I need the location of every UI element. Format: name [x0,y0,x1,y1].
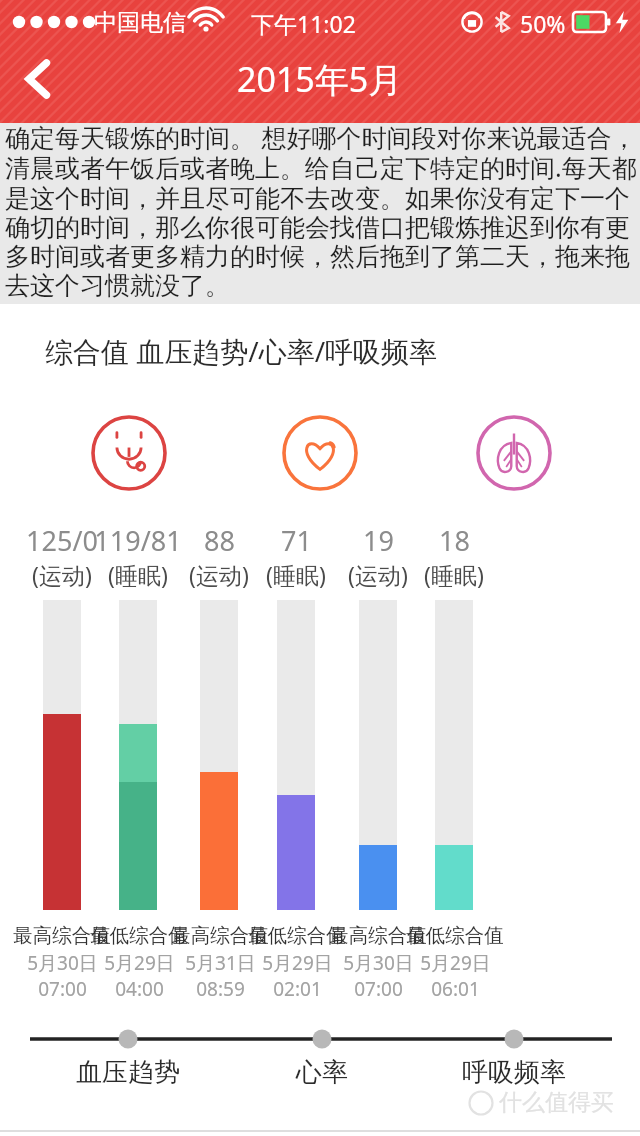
staticText: 71 [281,522,312,559]
staticText: 心率 [296,1056,348,1089]
staticText: 综合值 血压趋势/心率/呼吸频率 [45,332,438,370]
staticText: 07:00 [38,976,87,1002]
staticText: (睡眠) [266,559,326,590]
staticText: 5月30日 [27,950,98,976]
staticText: 06:01 [431,976,480,1002]
staticText: 5月31日 [185,950,256,976]
staticText: 5月29日 [262,950,333,976]
staticText: (睡眠) [108,559,168,590]
button[interactable]: 心率 [281,414,359,492]
staticText: 119/81 [94,522,182,559]
staticText: (运动) [348,559,408,590]
button[interactable]: 血压趋势 [58,1048,198,1096]
staticText: 88 [204,522,235,559]
staticText: 中国电信 [94,8,186,36]
staticText: 下午11:02 [251,8,356,36]
staticText: 最高综合值 [329,923,427,948]
button[interactable]: 呼吸频率 [444,1048,584,1096]
staticText: 什么值得买 [499,1088,614,1117]
staticText: 最低综合值 [406,923,504,948]
staticText: 07:00 [354,976,403,1002]
staticText: (运动) [32,559,92,590]
staticText: 5月30日 [343,950,414,976]
staticText: 确定每天锻炼的时间。 想好哪个时间段对你来说最适合，清晨或者午饭后或者晚上。给自… [5,120,639,301]
staticText: 125/0 [26,522,98,559]
staticText: (睡眠) [424,559,484,590]
staticText: 08:59 [196,976,245,1002]
staticText: 最低综合值 [248,923,346,948]
staticText: 血压趋势 [76,1056,180,1089]
staticText: 5月29日 [104,950,175,976]
button[interactable]: 血压趋势 [90,414,168,492]
staticText: 04:00 [115,976,164,1002]
staticText: 最低综合值 [90,923,188,948]
staticText: 呼吸频率 [462,1056,566,1089]
staticText: 19 [363,522,394,559]
staticText: 最高综合值 [13,923,111,948]
button[interactable]: 呼吸频率 [475,414,553,492]
button[interactable]: 返回 [8,48,70,110]
staticText: 2015年5月 [237,56,403,102]
staticText: 02:01 [273,976,322,1002]
button[interactable]: 心率 [252,1048,392,1096]
staticText: 5月29日 [420,950,491,976]
staticText: 50% [520,8,566,36]
staticText: 最高综合值 [171,923,269,948]
staticText: 18 [439,522,470,559]
staticText: (运动) [189,559,249,590]
